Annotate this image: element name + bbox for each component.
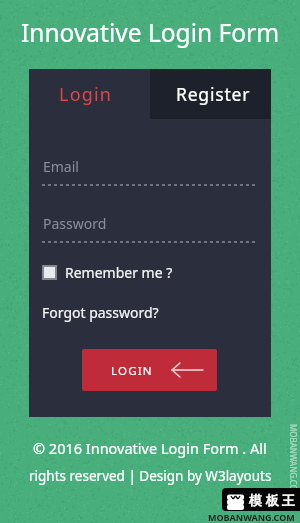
- staticText: MOBANWANG.COM: [208, 511, 295, 523]
- staticText: rights reserved | Design by W3layouts: [29, 467, 272, 485]
- staticText: Register: [176, 82, 251, 106]
- button[interactable]: Forgot password?: [42, 303, 159, 322]
- staticText: MOBANWANG.COM: [287, 424, 299, 496]
- staticText: © 2016 Innovative Login Form . All: [33, 438, 267, 458]
- staticText: Email: [43, 157, 79, 176]
- staticText: Innovative Login Form: [21, 16, 280, 49]
- staticText: LOGIN: [111, 363, 153, 379]
- staticText: Password: [43, 214, 107, 233]
- button[interactable]: Remember me ?: [42, 263, 173, 282]
- staticText: 模 板 王: [249, 491, 295, 509]
- button[interactable]: LOGIN: [82, 349, 217, 391]
- button[interactable]: Login: [29, 69, 150, 119]
- staticText: Remember me ?: [65, 263, 173, 282]
- button[interactable]: Register: [150, 69, 271, 119]
- staticText: Login: [59, 82, 113, 107]
- button[interactable]: 模 板 王: [222, 488, 300, 511]
